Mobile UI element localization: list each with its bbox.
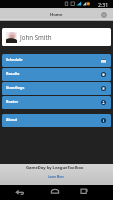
- staticText: John Smith: [20, 33, 52, 41]
- staticText: About: [6, 117, 18, 122]
- staticText: Schedule: [6, 57, 23, 62]
- button[interactable]: Recents: [77, 185, 92, 200]
- button[interactable]: Learn More: [48, 175, 64, 179]
- staticText: Home: [50, 12, 63, 18]
- button[interactable]: Results: [2, 68, 111, 81]
- staticText: 2:31: [98, 1, 109, 8]
- button[interactable]: Roster: [2, 96, 111, 109]
- button[interactable]: About: [2, 114, 111, 127]
- staticText: GameDay by LeagueToolbox: [26, 165, 84, 171]
- button[interactable]: Home: [49, 185, 64, 200]
- button[interactable]: John Smith: [2, 28, 111, 46]
- staticText: Roster: [6, 99, 19, 104]
- button[interactable]: Refresh: [99, 10, 109, 20]
- staticText: Results: [6, 71, 20, 76]
- button[interactable]: Standings: [2, 82, 111, 95]
- staticText: Standings: [6, 85, 25, 90]
- button[interactable]: Back: [13, 185, 28, 200]
- button[interactable]: Schedule: [2, 54, 111, 67]
